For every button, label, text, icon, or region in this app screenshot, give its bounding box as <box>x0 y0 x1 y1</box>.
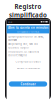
staticText: incididunt ut labore et dolore magna <box>8 50 39 57</box>
staticText: 9:41 <box>8 20 12 23</box>
staticText: Abre tu cuenta en minutos <box>8 26 48 29</box>
staticText: Registro <box>14 2 41 11</box>
staticText: Continuar <box>20 82 35 86</box>
staticText: simplificado <box>9 11 47 19</box>
staticText: sin papeleo y sin filas <box>17 30 39 33</box>
button[interactable]: Continuar <box>9 81 47 87</box>
staticText: adipiscing elit, sed do eiusmod tempor <box>8 42 38 49</box>
staticText: Completa tus datos <box>15 60 40 63</box>
staticText: Verifica la informacion <box>16 66 39 70</box>
staticText: Lorem ipsum dolor sit amet, consect <box>8 35 44 42</box>
